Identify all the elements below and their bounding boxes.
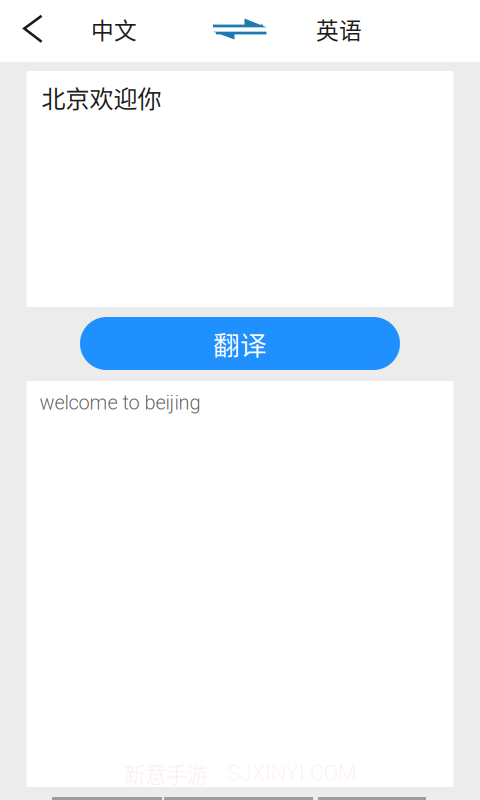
button[interactable]: 北京欢迎你 (26, 71, 453, 307)
button[interactable]: Swap languages (202, 0, 278, 59)
button[interactable]: welcome to beijing (26, 381, 453, 787)
button[interactable]: 翻译 (80, 317, 400, 370)
staticText: 翻译 (213, 324, 267, 363)
staticText: 中文 (91, 13, 137, 45)
staticText: 英语 (316, 13, 362, 45)
staticText: welcome to beijing (39, 391, 200, 414)
staticText: 北京欢迎你 (41, 80, 161, 115)
button[interactable]: 英语 (291, 0, 387, 59)
staticText: 新意手游 (124, 758, 208, 789)
button[interactable]: 中文 (66, 0, 162, 59)
staticText: SJXINYI.COM (227, 761, 356, 786)
button[interactable]: Back (3, 0, 63, 59)
